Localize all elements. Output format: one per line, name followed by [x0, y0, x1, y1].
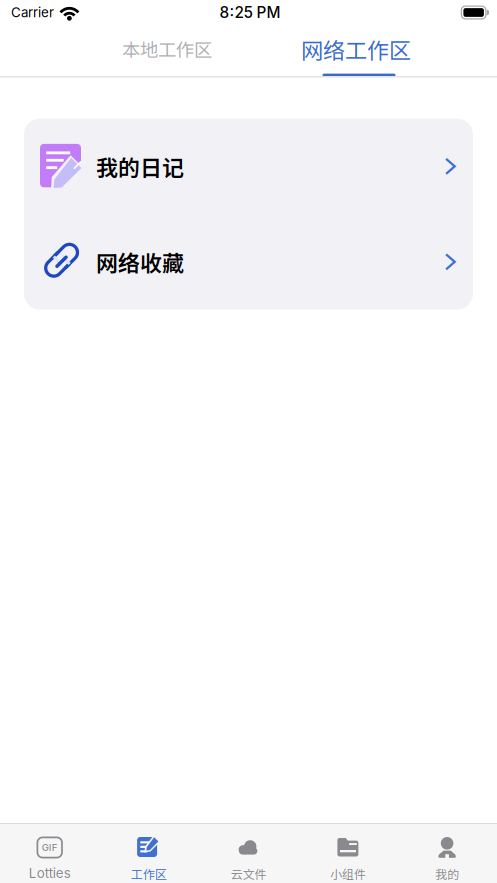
button[interactable]: GIF: [0, 824, 99, 883]
staticText: 我的日记: [96, 150, 184, 182]
button[interactable]: 工作区: [99, 824, 199, 883]
staticText: 工作区: [131, 865, 167, 882]
staticText: 我的: [435, 865, 459, 882]
staticText: 小组件: [330, 865, 366, 882]
button[interactable]: 云文件: [199, 824, 298, 883]
button[interactable]: 我的: [398, 824, 497, 883]
button[interactable]: 网络收藏: [24, 214, 473, 310]
button[interactable]: 本地工作区: [121, 25, 213, 76]
staticText: GIF: [42, 842, 58, 853]
staticText: 8:25 PM: [219, 3, 280, 22]
staticText: Carrier: [11, 4, 54, 20]
staticText: 网络收藏: [96, 246, 184, 278]
staticText: 本地工作区: [122, 35, 212, 62]
button[interactable]: 我的日记: [24, 119, 473, 214]
staticText: 网络工作区: [301, 33, 411, 65]
staticText: Lotties: [29, 865, 71, 881]
button[interactable]: 网络工作区: [300, 25, 412, 76]
staticText: 云文件: [230, 865, 266, 882]
button[interactable]: 小组件: [298, 824, 398, 883]
